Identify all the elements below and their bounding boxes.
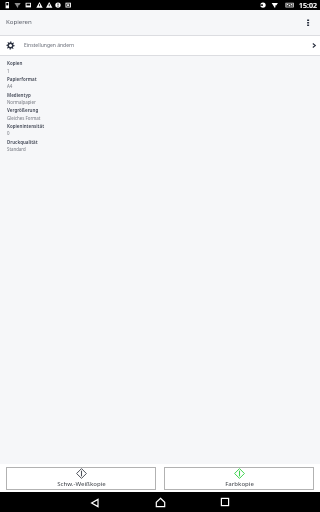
button[interactable]: Farbkopie — [164, 467, 314, 490]
staticText: 0 — [7, 130, 10, 136]
staticText: 1 — [7, 68, 10, 74]
staticText: 15:02 — [299, 1, 317, 11]
staticText: Einstellungen ändern — [24, 42, 75, 49]
staticText: Druckqualität — [7, 139, 38, 145]
button[interactable]: Recent apps — [215, 492, 235, 512]
staticText: Kopienintensität — [7, 123, 45, 129]
staticText: Kopieren — [6, 17, 32, 25]
staticText: A4 — [7, 83, 13, 89]
staticText: Kopien — [7, 60, 23, 66]
staticText: Vergrößerung — [7, 107, 39, 113]
button[interactable]: Einstellungen ändern — [0, 36, 320, 55]
staticText: Farbkopie — [225, 480, 254, 488]
staticText: Gleiches Format — [7, 115, 41, 121]
staticText: Normalpapier — [7, 99, 36, 105]
button[interactable]: Back — [85, 493, 105, 512]
staticText: Papierformat — [7, 76, 37, 82]
button[interactable]: Home — [150, 492, 170, 512]
button[interactable]: Schw.-Weißkopie — [6, 467, 156, 490]
staticText: Standard — [7, 146, 26, 152]
button[interactable]: More options — [298, 13, 318, 33]
staticText: Medientyp — [7, 92, 31, 98]
staticText: Schw.-Weißkopie — [57, 480, 106, 488]
